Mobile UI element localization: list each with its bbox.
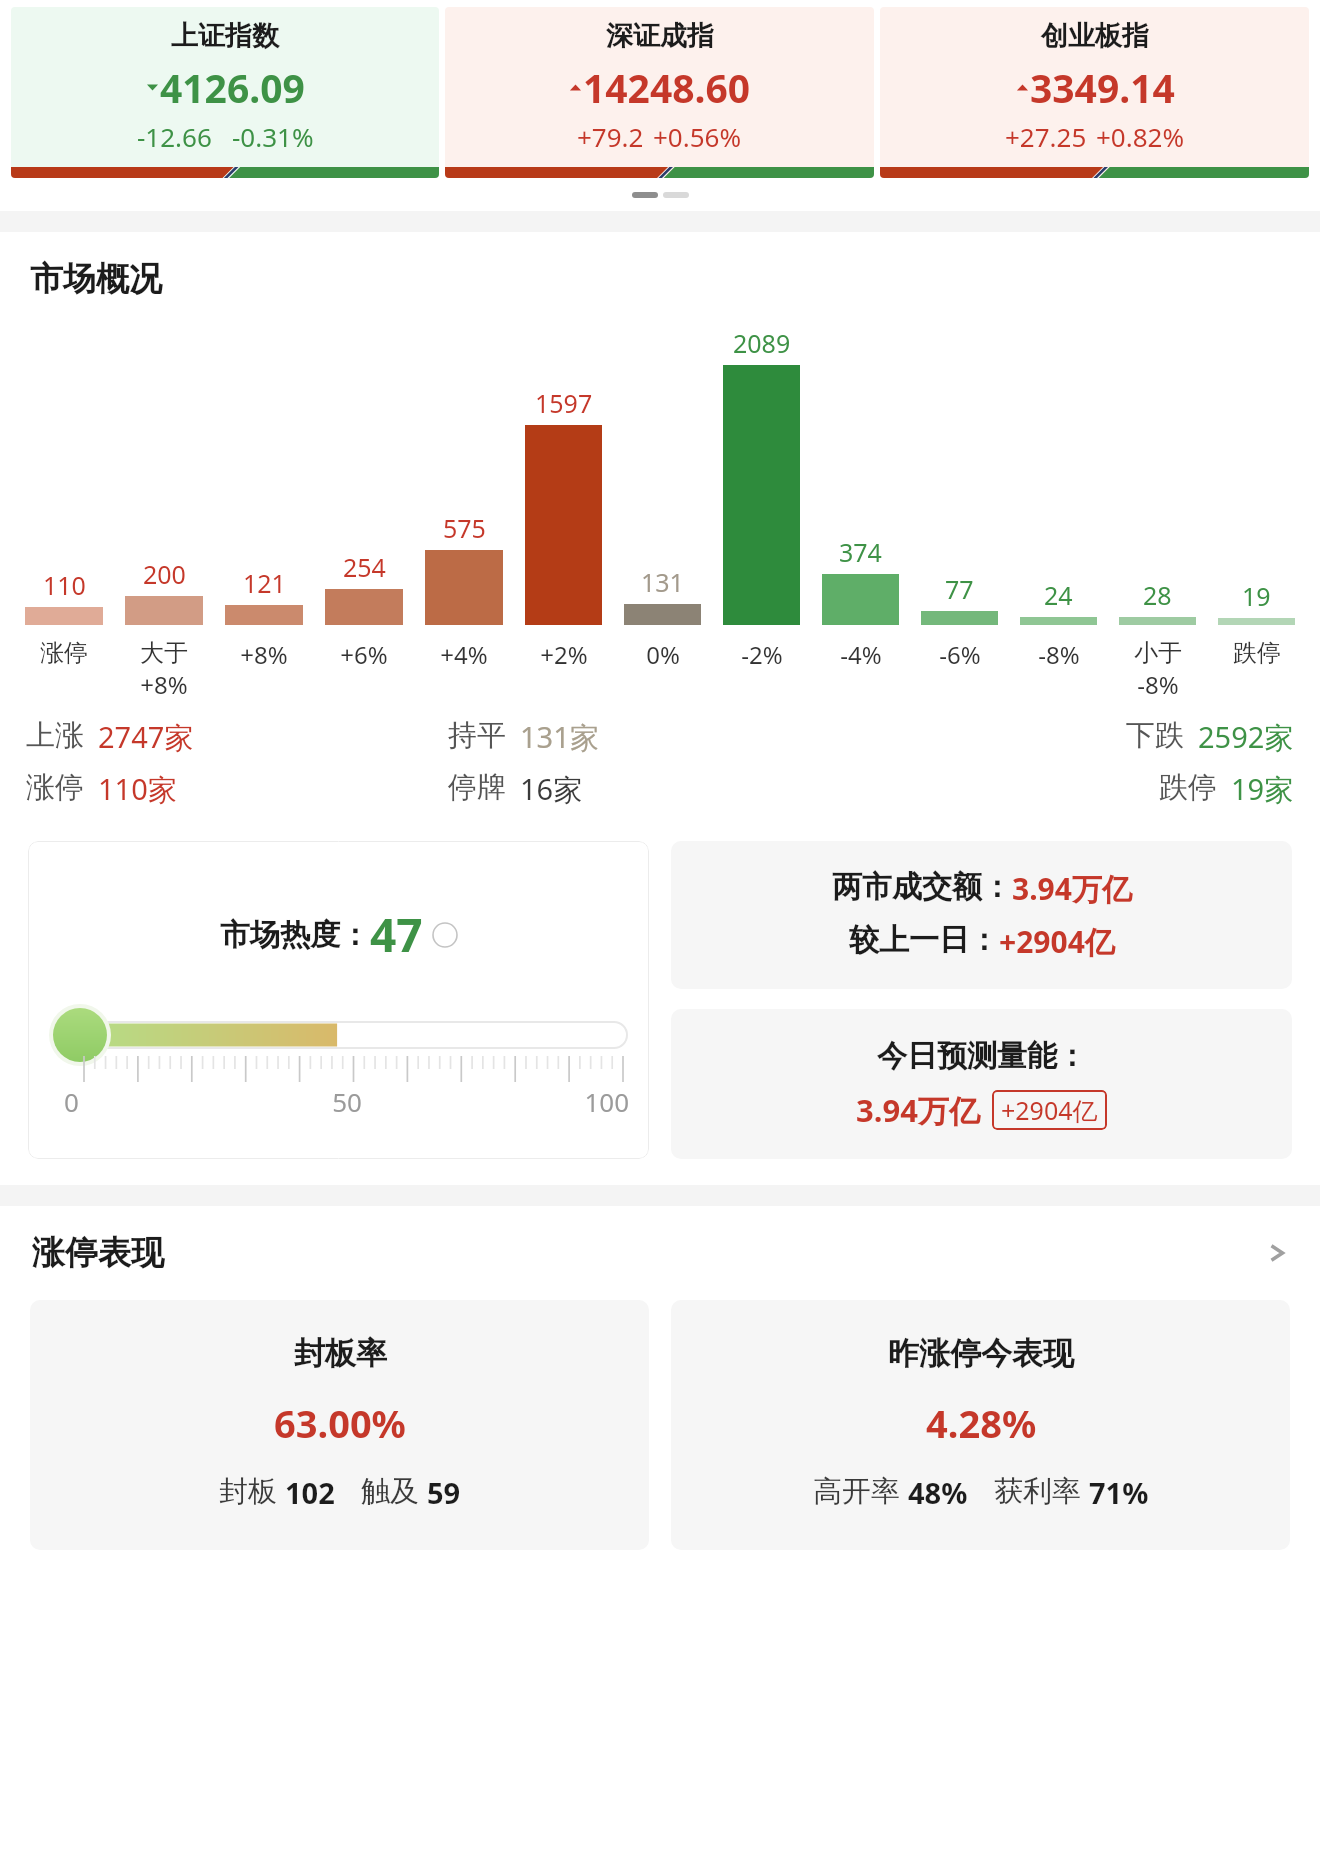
staticText: +79.2 bbox=[577, 119, 644, 154]
staticText: 上涨 bbox=[26, 717, 84, 754]
staticText: 涨停 bbox=[40, 638, 88, 668]
staticText: 获利率 bbox=[994, 1473, 1081, 1510]
staticText: 触及 bbox=[361, 1473, 419, 1510]
staticText: 创业板指 bbox=[1041, 19, 1149, 53]
staticText: +8% bbox=[240, 638, 288, 671]
staticText: 涨停表现 bbox=[32, 1232, 1266, 1274]
button[interactable]: 深证成指 bbox=[445, 7, 874, 178]
staticText: 下跌 bbox=[1126, 717, 1184, 754]
staticText: 100 bbox=[441, 1084, 629, 1119]
staticText: -0.31% bbox=[232, 119, 314, 154]
staticText: 77 bbox=[945, 572, 974, 606]
staticText: 110家 bbox=[98, 769, 177, 809]
staticText: 4.28% bbox=[926, 1397, 1037, 1449]
staticText: 停牌 bbox=[448, 769, 506, 806]
staticText: 涨停 bbox=[26, 769, 84, 806]
staticText: 374 bbox=[839, 535, 882, 569]
button[interactable]: 今日预测量能： bbox=[671, 1009, 1292, 1159]
staticText: +2904亿 bbox=[999, 921, 1115, 962]
staticText: -4% bbox=[840, 638, 882, 671]
staticText: 封板 bbox=[219, 1473, 277, 1510]
button[interactable]: 两市成交额： bbox=[671, 841, 1292, 989]
staticText: +2% bbox=[540, 638, 588, 671]
staticText: -8% bbox=[1038, 638, 1080, 671]
staticText: +27.25 bbox=[1005, 119, 1087, 154]
staticText: 131 bbox=[641, 565, 684, 599]
other: 热度说明 bbox=[432, 922, 458, 948]
staticText: +0.82% bbox=[1096, 119, 1185, 154]
staticText: +2904亿 bbox=[1001, 1093, 1098, 1127]
staticText: 0 bbox=[64, 1084, 253, 1119]
staticText: 市场热度： bbox=[220, 916, 370, 954]
staticText: 2747家 bbox=[98, 717, 194, 757]
button[interactable]: 上证指数 bbox=[11, 7, 439, 178]
staticText: -6% bbox=[939, 638, 981, 671]
staticText: 121 bbox=[243, 566, 286, 600]
staticText: 两市成交额： bbox=[832, 868, 1012, 906]
staticText: 上证指数 bbox=[171, 19, 279, 53]
staticText: 50 bbox=[253, 1084, 441, 1119]
staticText: 19家 bbox=[1231, 769, 1294, 809]
staticText: 110 bbox=[43, 568, 86, 602]
button[interactable]: 封板率 bbox=[30, 1300, 649, 1550]
staticText: 4126.09 bbox=[160, 61, 305, 114]
staticText: 较上一日： bbox=[849, 921, 999, 959]
staticText: 63.00% bbox=[274, 1397, 406, 1449]
staticText: 48% bbox=[908, 1473, 968, 1512]
staticText: 575 bbox=[443, 511, 486, 545]
other: 查看更多 bbox=[1266, 1235, 1288, 1271]
staticText: 3.94万亿 bbox=[856, 1089, 980, 1131]
staticText: 1597 bbox=[535, 386, 593, 420]
button[interactable]: 涨停表现 bbox=[0, 1232, 1320, 1274]
staticText: 跌停 bbox=[1233, 638, 1281, 668]
button[interactable]: 创业板指 bbox=[880, 7, 1309, 178]
staticText: 24 bbox=[1044, 578, 1073, 612]
staticText: 59 bbox=[427, 1473, 461, 1512]
staticText: 跌停 bbox=[1159, 769, 1217, 806]
staticText: 高开率 bbox=[813, 1473, 900, 1510]
staticText: 0% bbox=[646, 638, 680, 671]
staticText: 市场概况 bbox=[30, 258, 162, 300]
staticText: +6% bbox=[340, 638, 388, 671]
staticText: -2% bbox=[741, 638, 783, 671]
button[interactable]: 昨涨停今表现 bbox=[671, 1300, 1290, 1550]
staticText: 今日预测量能： bbox=[877, 1037, 1087, 1075]
staticText: 封板率 bbox=[294, 1334, 387, 1373]
button[interactable]: 市场热度： bbox=[28, 841, 649, 1159]
staticText: 小于 bbox=[1134, 638, 1182, 668]
staticText: 2592家 bbox=[1198, 717, 1294, 757]
staticText: 大于 bbox=[140, 638, 188, 668]
staticText: -12.66 bbox=[137, 119, 212, 154]
staticText: 14248.60 bbox=[583, 61, 751, 114]
staticText: 131家 bbox=[520, 717, 599, 757]
staticText: 3349.14 bbox=[1030, 61, 1175, 114]
staticText: 71% bbox=[1089, 1473, 1149, 1512]
staticText: 3.94万亿 bbox=[1012, 868, 1132, 909]
staticText: 102 bbox=[285, 1473, 335, 1512]
staticText: 2089 bbox=[733, 326, 791, 360]
staticText: +8% bbox=[140, 668, 188, 701]
staticText: 28 bbox=[1143, 578, 1172, 612]
staticText: 16家 bbox=[520, 769, 583, 809]
staticText: 19 bbox=[1242, 579, 1271, 613]
staticText: +4% bbox=[440, 638, 488, 671]
staticText: 昨涨停今表现 bbox=[888, 1334, 1074, 1373]
staticText: 持平 bbox=[448, 717, 506, 754]
staticText: 254 bbox=[343, 550, 386, 584]
staticText: 47 bbox=[370, 903, 423, 966]
staticText: +0.56% bbox=[653, 119, 742, 154]
staticText: 深证成指 bbox=[606, 19, 714, 53]
staticText: 200 bbox=[143, 557, 186, 591]
staticText: -8% bbox=[1137, 668, 1179, 701]
